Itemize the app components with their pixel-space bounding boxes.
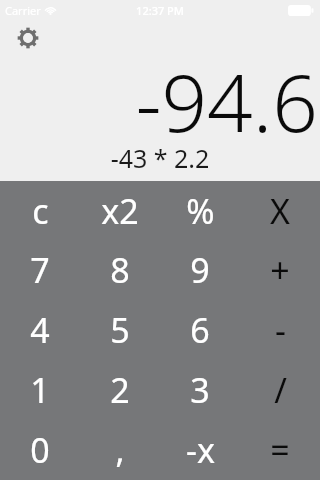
staticText: - — [275, 307, 286, 353]
staticText: -94.6 — [0, 46, 318, 155]
button[interactable]: 4 — [0, 300, 80, 360]
button[interactable]: , — [80, 420, 160, 480]
staticText: 1 — [30, 367, 50, 413]
button[interactable]: - — [240, 300, 320, 360]
button[interactable]: 0 — [0, 420, 80, 480]
staticText: c — [32, 188, 49, 234]
button[interactable]: c — [0, 181, 80, 240]
button[interactable]: 6 — [160, 300, 240, 360]
button[interactable]: X — [240, 181, 320, 240]
staticText: -43 * 2.2 — [0, 141, 320, 175]
staticText: + — [270, 247, 290, 293]
button[interactable]: / — [240, 360, 320, 420]
staticText: 3 — [190, 367, 210, 413]
button[interactable]: 7 — [0, 240, 80, 300]
staticText: 7 — [30, 247, 50, 293]
staticText: 9 — [190, 247, 210, 293]
staticText: 6 — [190, 307, 210, 353]
staticText: 2 — [110, 367, 130, 413]
staticText: / — [274, 367, 287, 413]
button[interactable]: x2 — [80, 181, 160, 240]
button[interactable]: = — [240, 420, 320, 480]
button[interactable]: Settings — [13, 23, 43, 53]
button[interactable]: 8 — [80, 240, 160, 300]
button[interactable]: -x — [160, 420, 240, 480]
button[interactable]: 9 — [160, 240, 240, 300]
staticText: , — [115, 427, 125, 473]
staticText: -x — [186, 427, 215, 473]
staticText: 0 — [30, 427, 50, 473]
staticText: x2 — [101, 188, 139, 234]
staticText: = — [270, 427, 290, 473]
staticText: 8 — [110, 247, 130, 293]
staticText: 12:37 PM — [136, 3, 184, 18]
button[interactable]: 5 — [80, 300, 160, 360]
button[interactable]: 1 — [0, 360, 80, 420]
button[interactable]: % — [160, 181, 240, 240]
button[interactable]: + — [240, 240, 320, 300]
button[interactable]: 2 — [80, 360, 160, 420]
staticText: X — [270, 188, 290, 234]
staticText: 4 — [30, 307, 50, 353]
button[interactable]: 3 — [160, 360, 240, 420]
staticText: % — [186, 188, 215, 234]
staticText: Carrier — [5, 3, 41, 18]
staticText: 5 — [110, 307, 130, 353]
